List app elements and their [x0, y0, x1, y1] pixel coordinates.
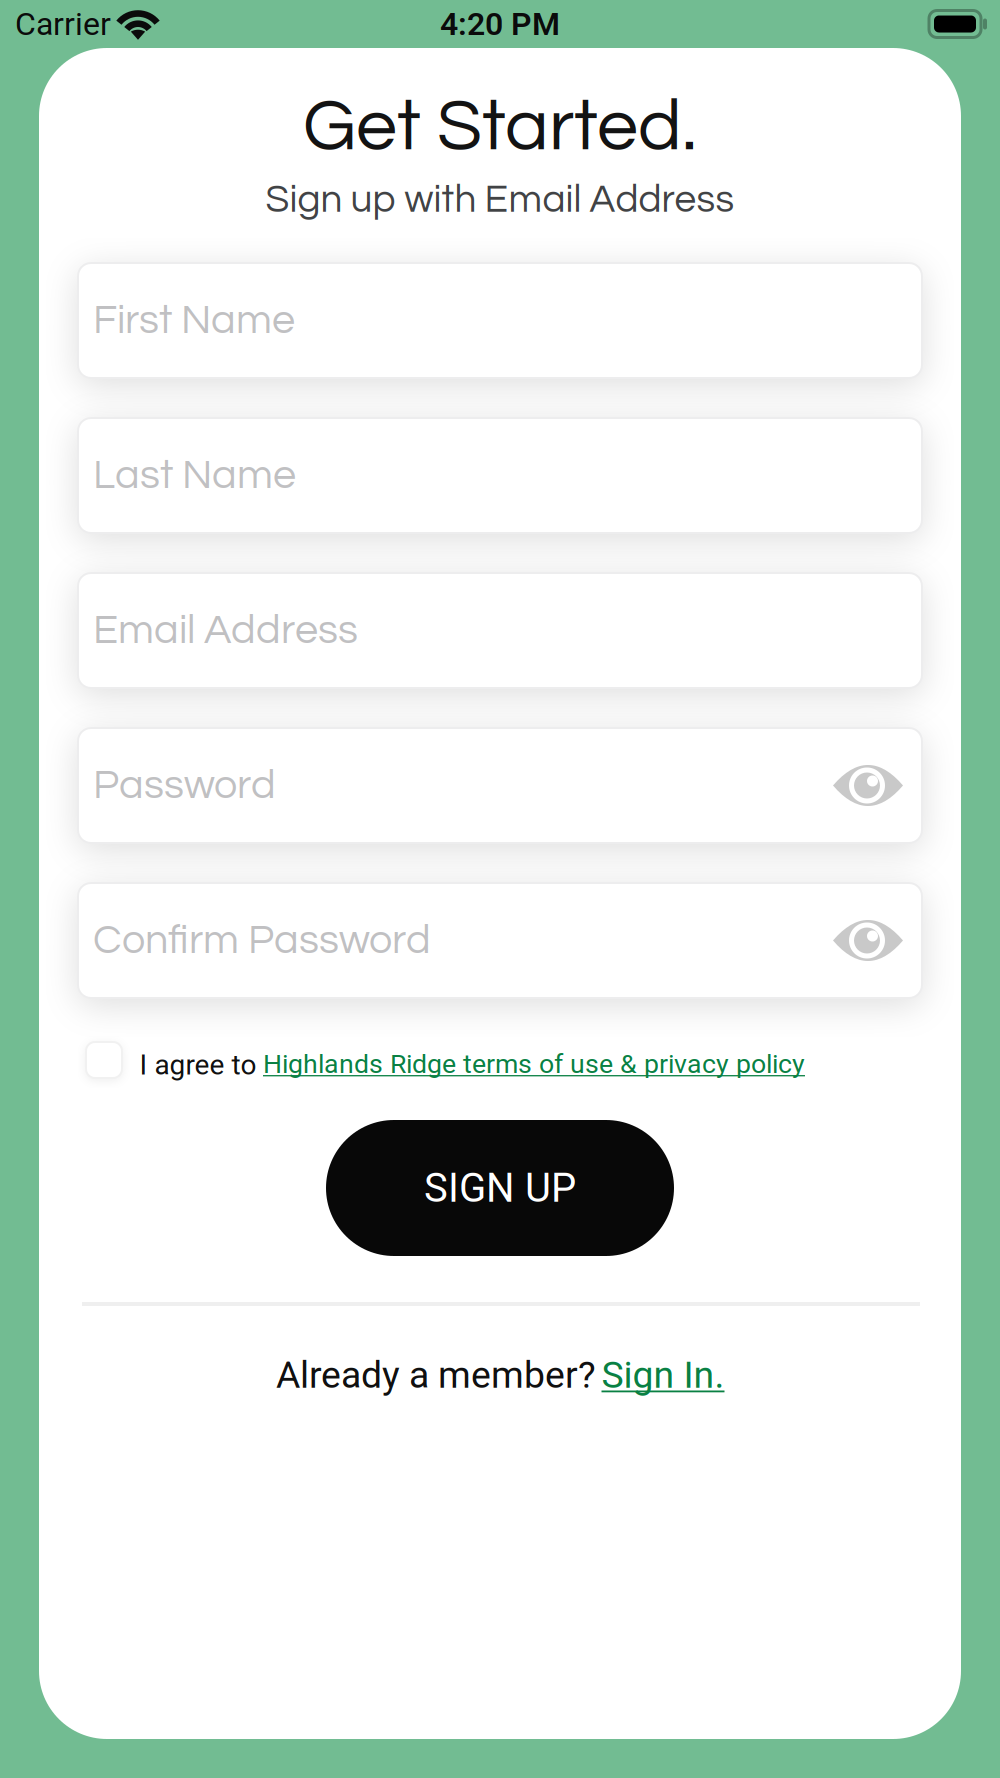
staticText: Sign up with Email Address [265, 180, 734, 220]
button[interactable]: Show Password [833, 766, 903, 804]
staticText: Highlands Ridge terms of use & privacy p… [263, 1048, 805, 1080]
button[interactable]: Sign In. [601, 1353, 724, 1397]
staticText: 4:20 PM [440, 5, 560, 43]
staticText: Carrier [15, 5, 111, 43]
staticText: First Name [93, 299, 295, 342]
staticText: Already a member? [276, 1353, 596, 1397]
staticText: Get Started. [303, 89, 697, 165]
staticText: Confirm Password [93, 919, 431, 962]
staticText: Email Address [93, 609, 358, 652]
button[interactable]: Show Confirm Password [833, 921, 903, 959]
staticText: Password [93, 764, 276, 807]
staticText: Last Name [93, 454, 296, 497]
button[interactable]: SIGN UP [326, 1120, 674, 1256]
button[interactable]: I agree to terms [86, 1042, 122, 1078]
button[interactable]: Highlands Ridge terms of use & privacy p… [263, 1048, 805, 1080]
staticText: Sign In. [601, 1353, 724, 1397]
staticText: I agree to [139, 1049, 256, 1081]
staticText: SIGN UP [424, 1165, 576, 1211]
